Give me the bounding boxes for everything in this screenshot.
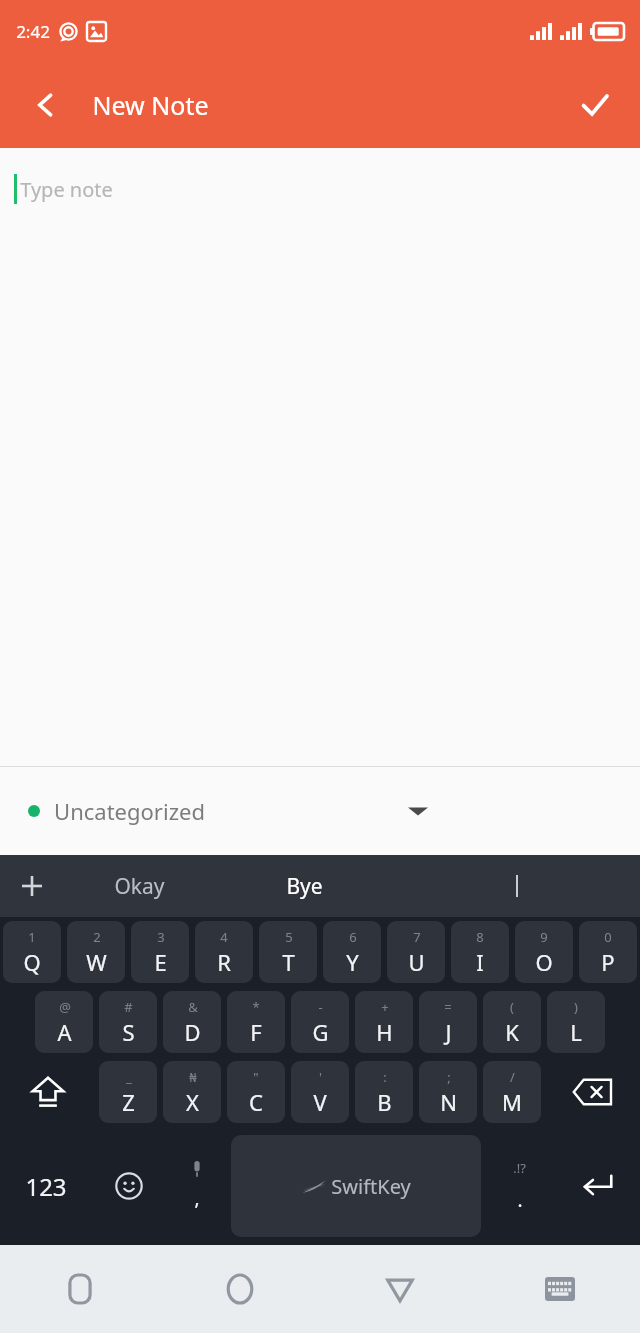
staticText: 9 — [540, 928, 548, 946]
staticText: _ — [126, 1068, 132, 1086]
button[interactable]: - — [291, 991, 349, 1053]
button[interactable]: 9 — [515, 921, 573, 983]
staticText: 2 — [93, 928, 101, 946]
staticText: K — [505, 1017, 519, 1047]
staticText: 0 — [604, 928, 612, 946]
staticText: @ — [59, 998, 71, 1016]
button[interactable]: Back — [320, 1245, 480, 1333]
button[interactable]: 5 — [259, 921, 317, 983]
button[interactable]: Save note — [570, 80, 620, 130]
button[interactable]: 7 — [387, 921, 445, 983]
button[interactable]: Back — [22, 81, 70, 129]
button[interactable]: ( — [483, 991, 541, 1053]
button[interactable]: ; — [419, 1061, 477, 1123]
staticText: ₦ — [189, 1068, 197, 1086]
staticText: Z — [122, 1087, 135, 1117]
staticText: S — [122, 1017, 135, 1047]
button[interactable]: " — [227, 1061, 285, 1123]
staticText: 1 — [28, 928, 36, 946]
staticText: G — [312, 1017, 329, 1047]
button[interactable]: Okay — [64, 855, 214, 917]
staticText: T — [282, 947, 295, 977]
staticText: L — [570, 1017, 582, 1047]
button[interactable]: 3 — [131, 921, 189, 983]
button[interactable]: Period and punctuation — [484, 1127, 554, 1245]
staticText: : — [383, 1068, 387, 1086]
staticText: - — [318, 998, 323, 1016]
staticText: 3 — [157, 928, 165, 946]
staticText: V — [313, 1087, 327, 1117]
staticText: SwiftKey — [331, 1173, 411, 1200]
button[interactable]: Uncategorized — [0, 767, 640, 855]
button[interactable]: Home — [160, 1245, 320, 1333]
staticText: C — [249, 1087, 263, 1117]
button[interactable]: / — [483, 1061, 541, 1123]
button[interactable]: 1 — [3, 921, 61, 983]
button[interactable]: + — [355, 991, 413, 1053]
staticText: " — [253, 1068, 259, 1086]
staticText: = — [444, 998, 452, 1016]
staticText: M — [502, 1087, 522, 1117]
button[interactable]: 2 — [67, 921, 125, 983]
button[interactable]: = — [419, 991, 477, 1053]
staticText: Q — [23, 947, 41, 977]
button[interactable]: Hide keyboard — [480, 1245, 640, 1333]
button[interactable]: 123 — [0, 1127, 92, 1245]
button[interactable]: ' — [291, 1061, 349, 1123]
staticText: O — [535, 947, 553, 977]
button[interactable]: @ — [35, 991, 93, 1053]
staticText: E — [154, 947, 167, 977]
button[interactable]: 6 — [323, 921, 381, 983]
staticText: R — [217, 947, 231, 977]
button[interactable]: ₦ — [163, 1061, 221, 1123]
button[interactable]: Comma, voice input — [166, 1127, 228, 1245]
button[interactable]: 0 — [579, 921, 637, 983]
button[interactable]: ) — [547, 991, 605, 1053]
staticText: 6 — [349, 928, 357, 946]
staticText: 2:42 — [16, 20, 50, 43]
button[interactable]: & — [163, 991, 221, 1053]
button[interactable]: Add — [0, 855, 64, 917]
staticText: W — [86, 947, 107, 977]
button[interactable]: * — [227, 991, 285, 1053]
staticText: ; — [447, 1068, 451, 1086]
staticText: P — [601, 947, 615, 977]
staticText: / — [510, 1068, 515, 1086]
staticText: .!? — [513, 1159, 526, 1177]
staticText: , — [194, 1185, 200, 1211]
staticText: N — [440, 1087, 457, 1117]
staticText: Y — [346, 947, 359, 977]
staticText: Type note — [20, 176, 113, 203]
staticText: . — [517, 1187, 523, 1213]
button[interactable]: Shift — [0, 1057, 96, 1127]
staticText: J — [445, 1017, 452, 1047]
staticText: 5 — [285, 928, 293, 946]
staticText: B — [377, 1087, 392, 1117]
staticText: 7 — [413, 928, 421, 946]
button[interactable]: # — [99, 991, 157, 1053]
staticText: ( — [510, 998, 514, 1016]
button[interactable]: Enter — [554, 1127, 640, 1245]
staticText: U — [408, 947, 425, 977]
button[interactable]: Recent apps — [0, 1245, 160, 1333]
button[interactable]: 4 — [195, 921, 253, 983]
staticText: 123 — [25, 1170, 67, 1203]
staticText: H — [376, 1017, 393, 1047]
staticText: * — [252, 998, 260, 1016]
button[interactable]: _ — [99, 1061, 157, 1123]
staticText: F — [250, 1017, 262, 1047]
staticText: 8 — [476, 928, 484, 946]
button[interactable]: : — [355, 1061, 413, 1123]
staticText: # — [124, 998, 133, 1016]
staticText: New Note — [92, 88, 209, 122]
staticText: Bye — [286, 872, 323, 901]
button[interactable]: Space — [231, 1135, 481, 1237]
staticText: ' — [319, 1068, 322, 1086]
staticText: A — [57, 1017, 72, 1047]
staticText: I — [476, 947, 484, 977]
button[interactable]: 8 — [451, 921, 509, 983]
button[interactable]: Emoji — [92, 1127, 166, 1245]
button[interactable]: Backspace — [544, 1057, 640, 1127]
staticText: + — [381, 998, 389, 1016]
button[interactable]: Bye — [214, 855, 394, 917]
